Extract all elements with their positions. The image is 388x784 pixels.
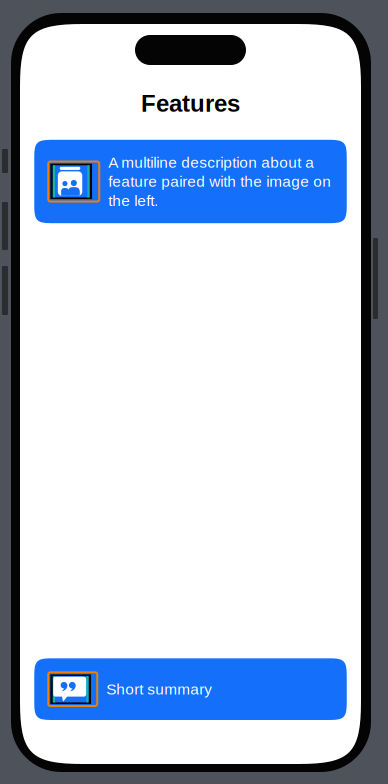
staticText: Features (141, 90, 240, 117)
button[interactable]: Short summary (34, 658, 347, 720)
button[interactable]: A multiline description about a feature … (34, 140, 347, 223)
staticText: A multiline description about a feature … (108, 154, 331, 209)
staticText: Short summary (106, 681, 212, 698)
